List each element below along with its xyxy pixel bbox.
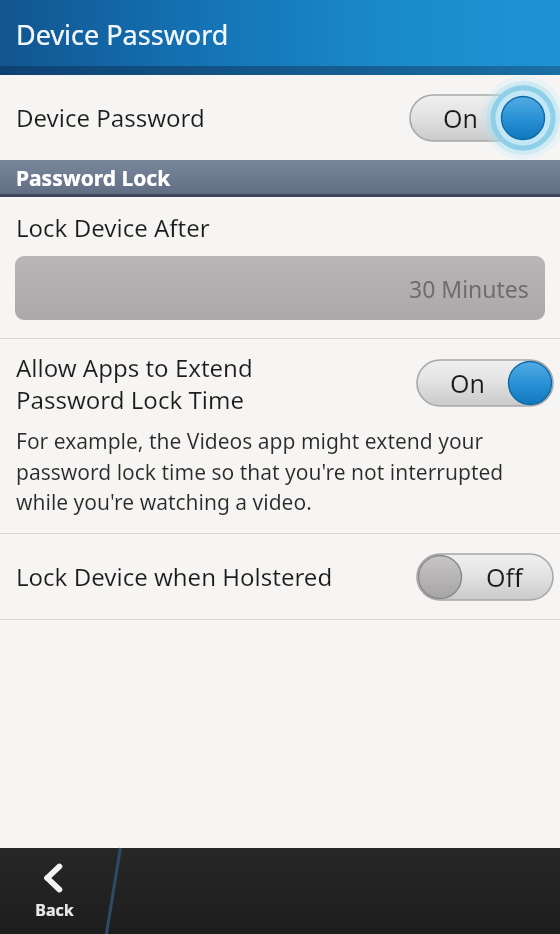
staticText: Password Lock — [16, 164, 171, 193]
staticText: 30 Minutes — [409, 273, 529, 304]
button[interactable]: 30 Minutes — [15, 256, 545, 320]
staticText: On — [450, 366, 485, 400]
button[interactable]: Toggle off — [417, 554, 553, 600]
staticText: Allow Apps to Extend Password Lock Time — [16, 351, 253, 416]
button[interactable]: Lock Device when Holstered — [0, 534, 560, 619]
button[interactable]: Back — [14, 861, 94, 921]
staticText: Lock Device After — [16, 211, 210, 244]
button[interactable]: Allow Apps to Extend Password Lock Time — [0, 339, 560, 427]
staticText: Device Password — [16, 101, 205, 134]
staticText: Back — [35, 899, 74, 921]
button[interactable]: Toggle on — [403, 76, 553, 160]
staticText: Lock Device when Holstered — [16, 560, 333, 593]
staticText: On — [443, 101, 478, 135]
button[interactable]: Toggle on — [417, 360, 553, 406]
staticText: For example, the Videos app might extend… — [16, 427, 504, 516]
staticText: Device Password — [16, 16, 229, 53]
staticText: Off — [486, 560, 523, 594]
button[interactable]: Device Password — [0, 75, 560, 160]
